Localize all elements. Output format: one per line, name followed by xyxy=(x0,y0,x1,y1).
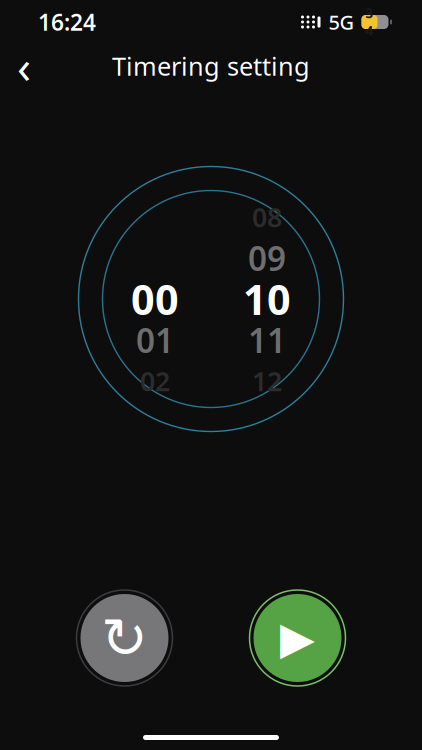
staticText: 11 xyxy=(248,318,286,362)
staticText: 10 xyxy=(243,272,291,326)
staticText: 02 xyxy=(140,363,170,399)
staticText: 01 xyxy=(136,318,174,362)
staticText: 5G xyxy=(328,9,354,35)
staticText: Timering setting xyxy=(112,49,310,83)
staticText: ↻ xyxy=(101,606,148,670)
button[interactable]: Reset timer xyxy=(75,589,173,687)
staticText: 08 xyxy=(252,199,282,235)
button[interactable]: Start timer xyxy=(248,589,346,687)
staticText: 34 xyxy=(365,4,373,40)
staticText: 00 xyxy=(131,272,179,326)
button[interactable]: Back xyxy=(0,44,48,88)
staticText: 12 xyxy=(252,363,282,399)
staticText: 16:24 xyxy=(38,7,96,37)
staticText: ‹ xyxy=(17,36,31,96)
staticText: ▶ xyxy=(280,612,315,664)
staticText: 09 xyxy=(248,236,286,280)
